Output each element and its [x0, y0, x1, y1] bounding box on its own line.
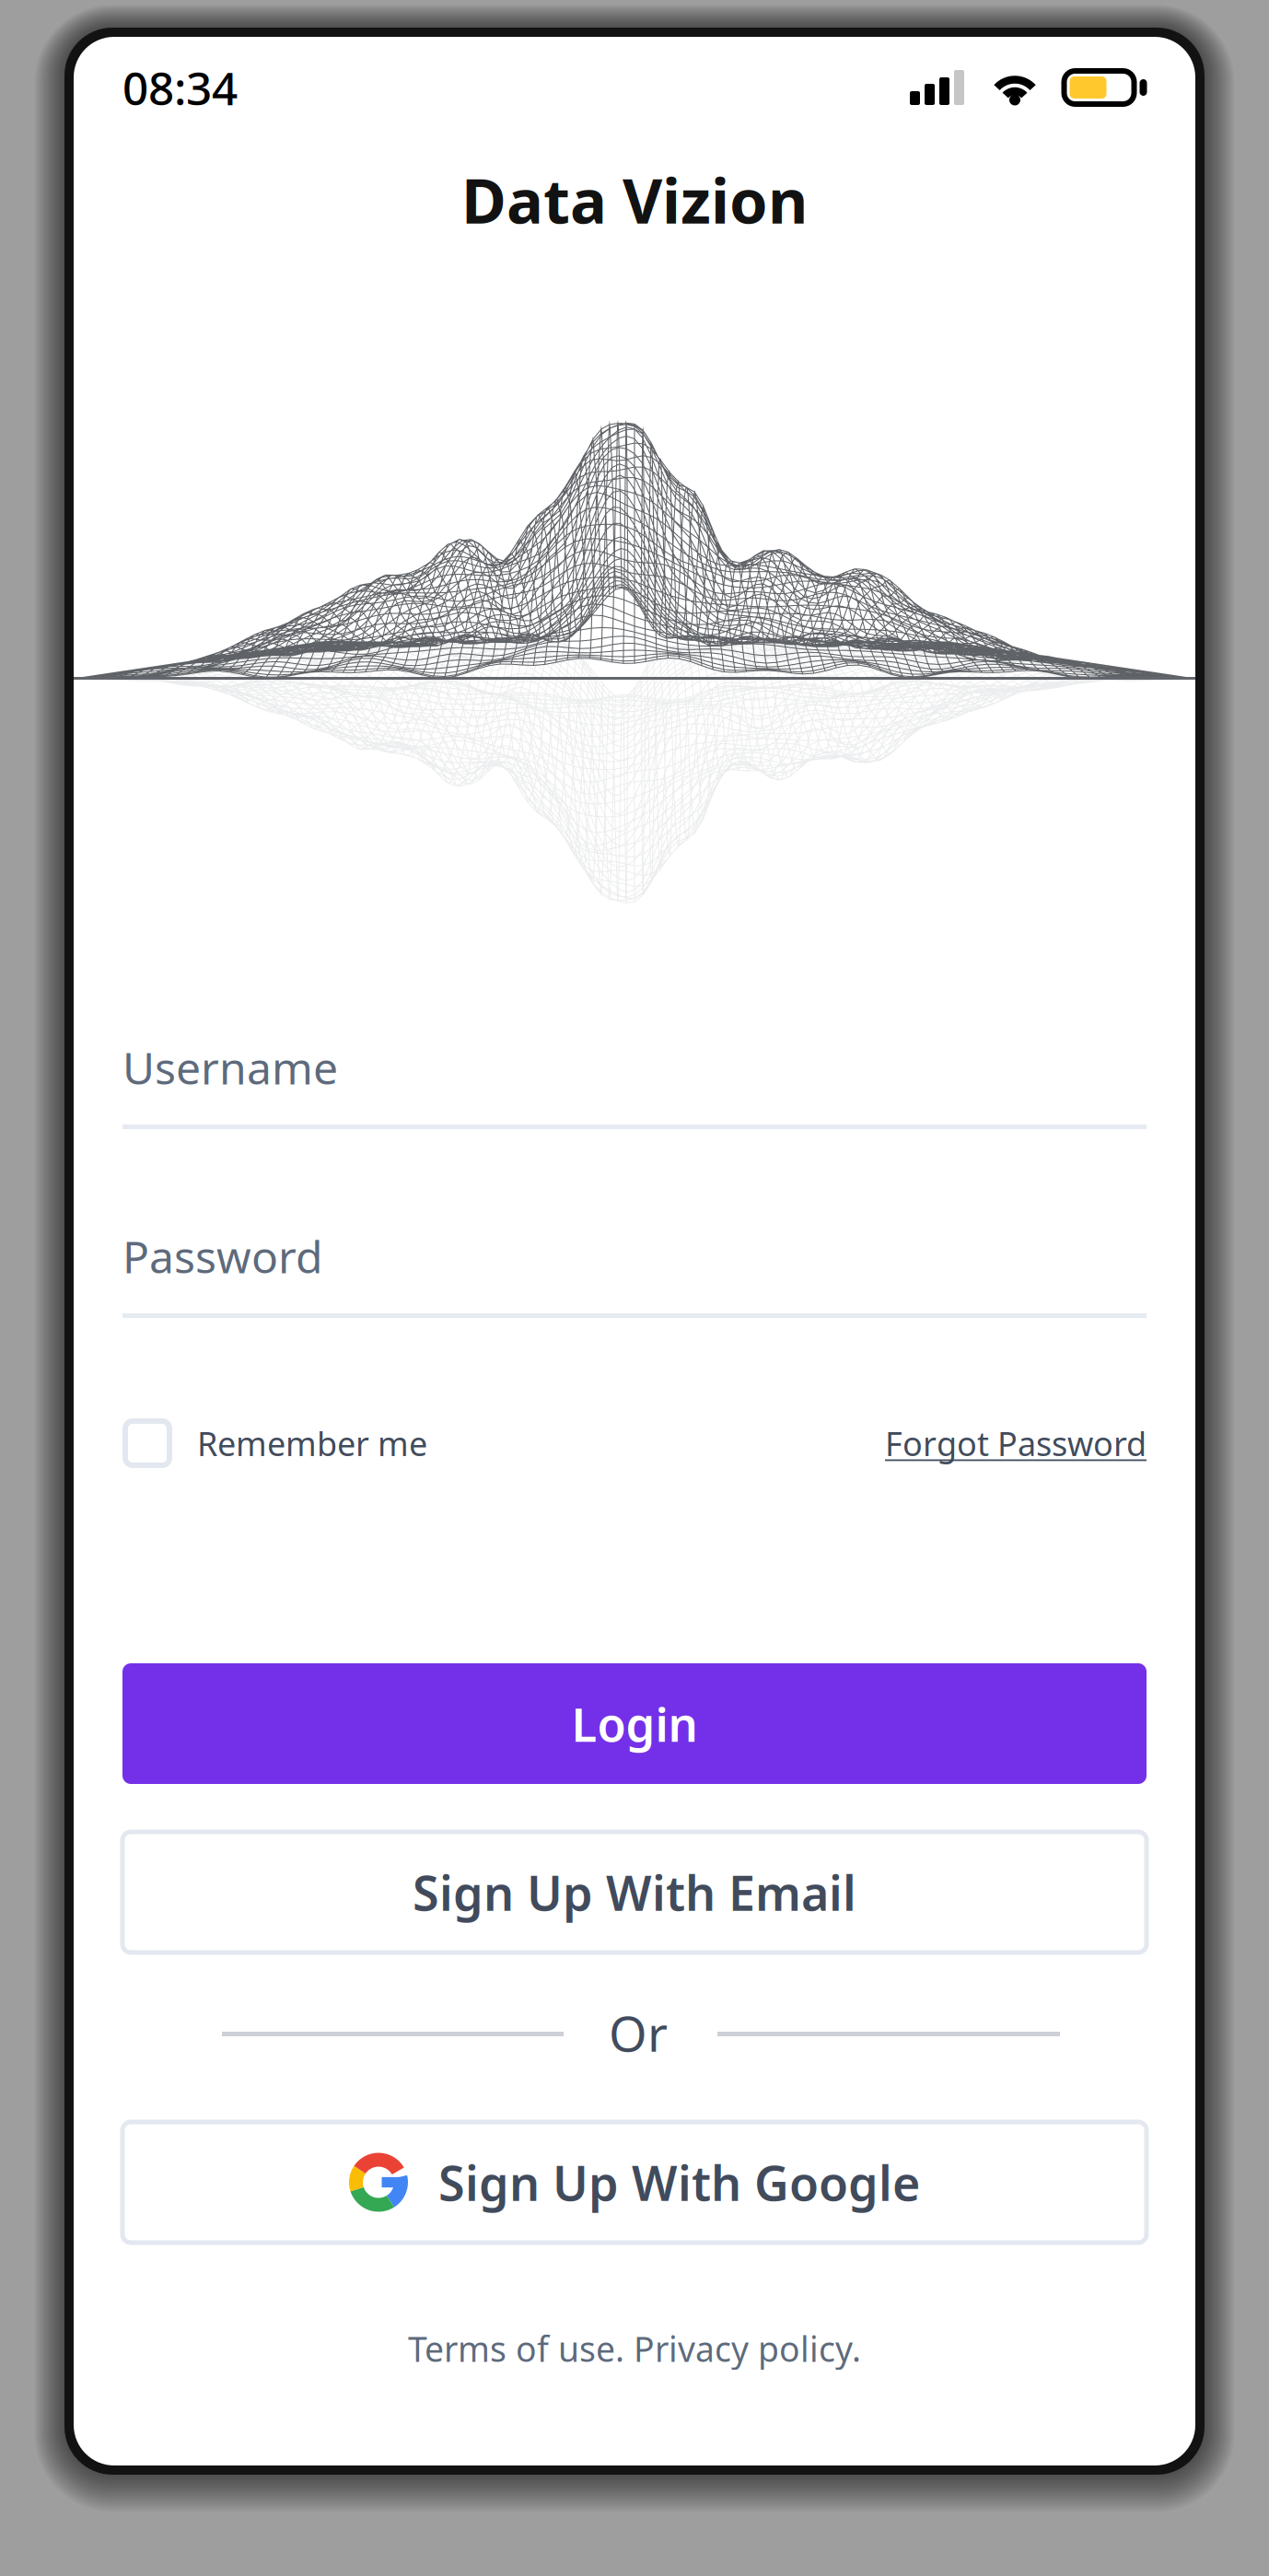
staticText: Username	[122, 1038, 338, 1097]
staticText: Forgot Password	[885, 1421, 1147, 1465]
button[interactable]: Sign Up With Google	[122, 2122, 1147, 2243]
staticText: Data Vizion	[461, 159, 808, 241]
staticText: Terms of use. Privacy policy.	[408, 2326, 861, 2371]
staticText: Or	[609, 2000, 668, 2065]
staticText: Sign Up With Google	[438, 2151, 920, 2214]
staticText: Remember me	[197, 1421, 427, 1465]
button[interactable]: Remember me	[122, 1415, 427, 1472]
button[interactable]: Sign Up With Email	[122, 1832, 1147, 1952]
staticText: Login	[571, 1693, 698, 1755]
staticText: Sign Up With Email	[413, 1860, 856, 1924]
button[interactable]: Terms of use. Privacy policy.	[122, 2316, 1147, 2381]
button[interactable]: Forgot Password	[885, 1415, 1147, 1472]
button[interactable]: Login	[122, 1663, 1147, 1784]
staticText: Password	[122, 1227, 323, 1286]
staticText: 08:34	[122, 57, 238, 118]
